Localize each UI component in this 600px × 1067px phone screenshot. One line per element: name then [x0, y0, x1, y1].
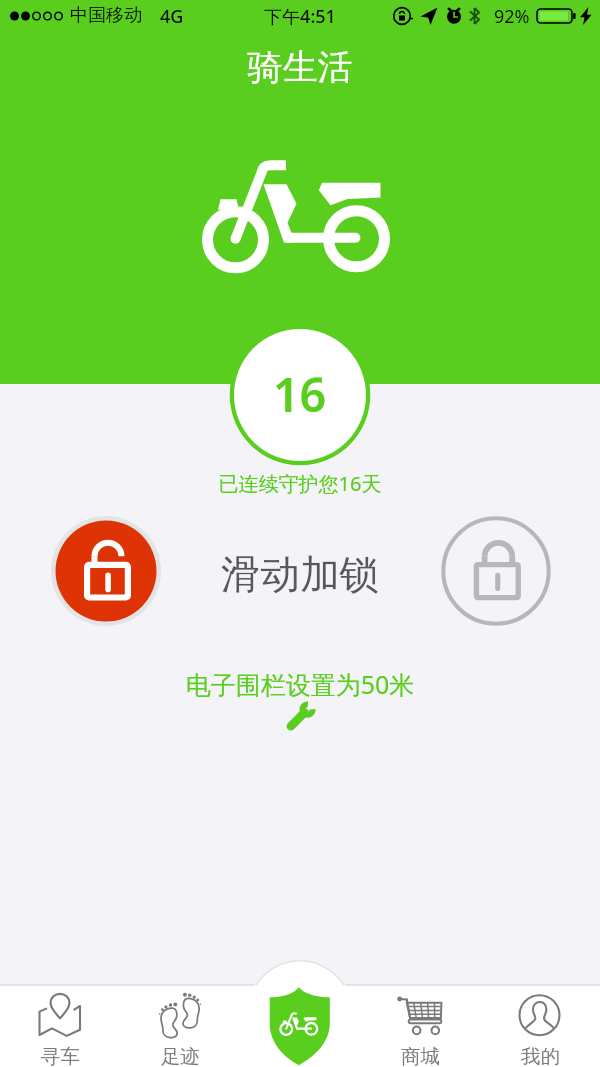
staticText: 4G [160, 4, 184, 29]
button[interactable]: 商城 [360, 985, 480, 1067]
staticText: 足迹 [161, 1044, 200, 1067]
button[interactable]: 寻车 [0, 985, 120, 1067]
staticText: 下午4:51 [0, 4, 600, 29]
staticText: 骑生活 [0, 45, 600, 89]
staticText: 寻车 [41, 1044, 80, 1067]
button[interactable]: 我的 [480, 985, 600, 1067]
staticText: 中国移动 [70, 4, 142, 27]
staticText: 滑动加锁 [0, 550, 600, 600]
staticText: 我的 [521, 1044, 560, 1067]
staticText: 电子围栏设置为50米 [0, 667, 600, 701]
staticText: 16 [273, 362, 327, 425]
staticText: 商城 [401, 1044, 440, 1067]
button[interactable]: 电子围栏设置为50米 [0, 667, 600, 737]
button[interactable]: Ride [264, 982, 336, 1067]
button[interactable]: Lock [441, 516, 551, 626]
staticText: 92% [494, 4, 530, 29]
button[interactable]: Unlock [50, 515, 162, 627]
button[interactable]: 足迹 [120, 985, 240, 1067]
staticText: 已连续守护您16天 [0, 470, 600, 497]
